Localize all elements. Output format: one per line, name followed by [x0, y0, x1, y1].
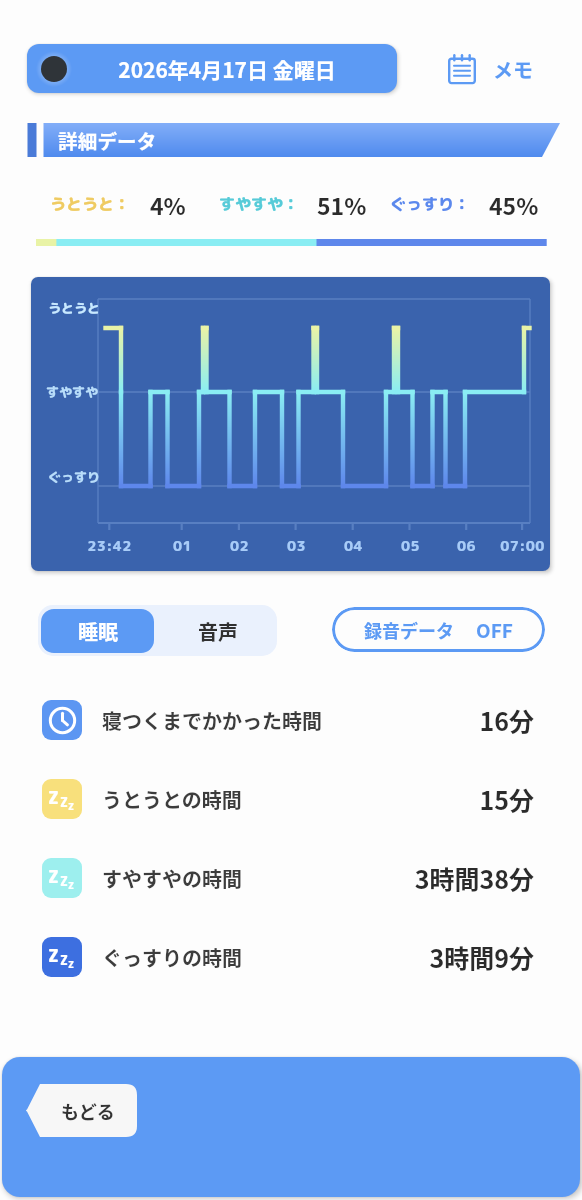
staticText: ぐっすりの時間: [102, 943, 242, 972]
staticText: 寝つくまでかかった時間: [102, 706, 322, 735]
staticText: Z: [68, 958, 75, 971]
staticText: Z: [68, 800, 75, 813]
staticText: Z: [48, 786, 59, 810]
button[interactable]: [0, 681, 582, 759]
button[interactable]: [27, 44, 397, 93]
staticText: 51%: [317, 188, 367, 221]
staticText: ぐっすり: [48, 468, 101, 486]
other: メモ: [446, 53, 478, 85]
button[interactable]: 録音データ: [332, 607, 545, 652]
staticText: 4%: [150, 188, 186, 221]
staticText: すやすやの時間: [102, 864, 242, 893]
staticText: Z: [48, 865, 59, 889]
staticText: 音声: [198, 617, 238, 646]
staticText: 07:00: [500, 536, 545, 556]
staticText: 3時間38分: [414, 860, 534, 896]
staticText: Z: [48, 944, 59, 968]
staticText: 睡眠: [78, 617, 118, 646]
staticText: メモ: [493, 55, 533, 84]
staticText: うとうと: [48, 299, 101, 317]
staticText: 23:42: [87, 536, 132, 556]
staticText: 01: [173, 536, 192, 556]
staticText: ぐっすり：: [390, 193, 471, 215]
staticText: すやすや: [46, 383, 99, 401]
staticText: Z: [60, 952, 68, 969]
staticText: Z: [60, 873, 68, 890]
button[interactable]: [0, 918, 582, 996]
button[interactable]: [0, 839, 582, 917]
staticText: Z: [60, 794, 68, 811]
staticText: 04: [344, 536, 363, 556]
staticText: うとうと：: [50, 193, 131, 215]
staticText: 02: [230, 536, 249, 556]
staticText: 録音データ: [364, 617, 454, 643]
staticText: 3時間9分: [429, 939, 534, 975]
staticText: Z: [68, 879, 75, 892]
button[interactable]: もどる: [26, 1084, 137, 1137]
staticText: 03: [287, 536, 306, 556]
staticText: もどる: [61, 1098, 115, 1124]
button[interactable]: 睡眠: [41, 609, 154, 653]
staticText: すやすや：: [219, 193, 300, 215]
staticText: 15分: [479, 781, 534, 817]
staticText: 2026年4月17日 金曜日: [118, 54, 336, 84]
staticText: 16分: [479, 702, 534, 738]
button[interactable]: [0, 760, 582, 838]
staticText: 06: [457, 536, 476, 556]
staticText: 05: [401, 536, 420, 556]
staticText: 詳細データ: [58, 126, 157, 154]
button[interactable]: 音声: [161, 609, 274, 653]
staticText: 45%: [489, 188, 539, 221]
staticText: OFF: [476, 616, 513, 644]
button[interactable]: メモ: [446, 42, 543, 96]
staticText: うとうとの時間: [102, 785, 242, 814]
